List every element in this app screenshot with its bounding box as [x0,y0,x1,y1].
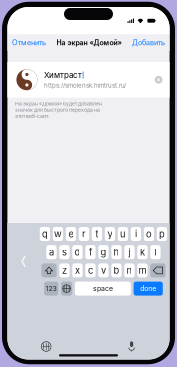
button[interactable]: Добавить [129,33,170,52]
staticText: m [138,265,146,276]
button[interactable]: g [98,245,109,259]
staticText: x [75,265,80,276]
button[interactable]: k [137,245,148,259]
button[interactable]: q [40,227,50,241]
staticText: u [120,228,126,240]
staticText: s [62,247,67,258]
button[interactable]: t [92,227,102,241]
button[interactable]: z [59,263,70,277]
staticText: r [82,228,86,240]
staticText: space [93,284,113,293]
button[interactable]: p [157,227,167,241]
button[interactable]: Сменить клавиатуру [38,339,54,354]
staticText: c [88,265,93,276]
button[interactable]: Развернуть клавиатуру [16,250,31,273]
staticText: q [42,228,48,240]
button[interactable]: Удалить [150,263,165,277]
button[interactable]: e [66,227,76,241]
staticText: g [100,247,106,258]
staticText: b [113,265,119,276]
button[interactable]: i [131,227,141,241]
button[interactable]: 123 [44,282,58,296]
staticText: n [126,265,132,276]
button[interactable]: l [150,245,161,259]
staticText: done [140,284,156,293]
staticText: k [140,247,145,258]
staticText: w [54,228,62,240]
button[interactable]: s [59,245,70,259]
staticText: z [62,265,67,276]
staticText: h [113,247,119,258]
button[interactable]: u [118,227,128,241]
staticText: t [95,228,98,240]
staticText: i [135,228,137,240]
button[interactable]: Shift [41,263,57,277]
staticText: v [101,265,106,276]
button[interactable]: r [79,227,89,241]
button[interactable]: h [111,245,122,259]
button[interactable]: Отменить [7,33,49,52]
staticText: f [89,247,92,258]
staticText: d [74,247,80,258]
staticText: p [159,228,165,240]
button[interactable]: Очистить [152,73,166,87]
staticText: y [107,228,112,240]
staticText: 123 [46,285,57,292]
button[interactable]: a [46,245,57,259]
staticText: j [128,247,130,258]
staticText: На экран «Домой» [56,39,121,47]
button[interactable]: x [72,263,83,277]
staticText: l [154,247,156,258]
staticText: e [68,228,73,240]
button[interactable]: j [124,245,135,259]
button[interactable]: w [53,227,63,241]
staticText: Добавить [132,38,165,47]
button[interactable]: Эмодзи [61,282,72,296]
staticText: Химтраст [44,70,82,80]
button[interactable]: m [137,263,148,277]
button[interactable]: space [75,282,131,296]
button[interactable]: Диктовка [125,338,139,354]
staticText: a [49,247,54,258]
button[interactable]: f [85,245,96,259]
button[interactable]: b [111,263,122,277]
button[interactable]: c [85,263,96,277]
staticText: https://smolensk.himtrust.ru/ [44,82,126,89]
button[interactable]: y [105,227,115,241]
button[interactable]: v [98,263,109,277]
button[interactable]: n [124,263,135,277]
button[interactable]: done [134,282,163,296]
staticText: o [146,228,152,240]
staticText: На экран «Домой» будет добавлен значок д… [15,100,102,119]
button[interactable]: d [72,245,83,259]
staticText: Отменить [12,38,46,47]
button[interactable]: o [144,227,154,241]
